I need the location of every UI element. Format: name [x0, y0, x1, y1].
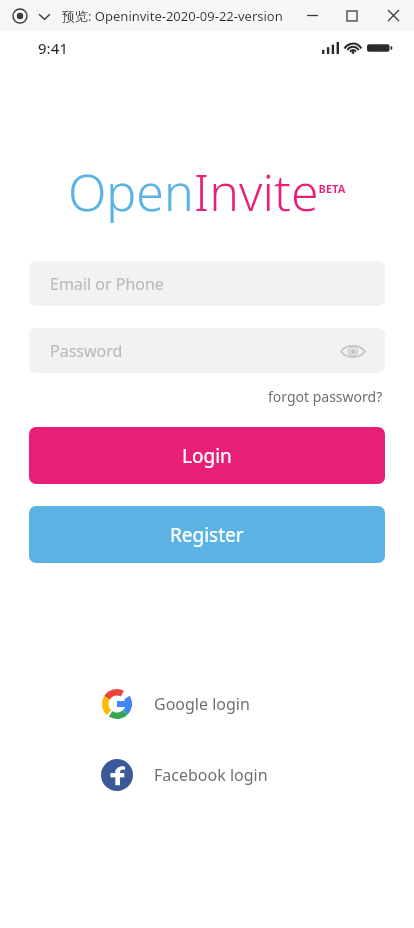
staticText: Register [170, 522, 244, 548]
button[interactable]: Show password [339, 337, 367, 365]
button[interactable]: Maximize [332, 0, 372, 31]
staticText: Facebook login [154, 764, 268, 786]
staticText: Google login [154, 693, 250, 715]
staticText: Login [182, 443, 232, 469]
button[interactable]: Google login [97, 680, 317, 728]
staticText: OpenInviteBETA [68, 158, 346, 226]
button[interactable]: Close [372, 0, 414, 31]
button[interactable]: Facebook login [97, 751, 317, 799]
staticText: 9:41 [38, 38, 68, 58]
staticText: Email or Phone [50, 273, 164, 295]
button[interactable]: Minimize [292, 0, 332, 31]
button[interactable]: Register [29, 506, 385, 563]
staticText: forgot password? [268, 387, 383, 406]
button[interactable]: Password [29, 328, 385, 373]
button[interactable]: Login [29, 427, 385, 484]
button[interactable]: Menu [34, 6, 54, 26]
staticText: Password [50, 340, 123, 362]
button[interactable]: Email or Phone [29, 261, 385, 306]
button[interactable]: forgot password? [266, 385, 385, 408]
button[interactable]: Record [8, 4, 32, 28]
staticText: 预览: Openinvite-2020-09-22-version [62, 7, 283, 25]
